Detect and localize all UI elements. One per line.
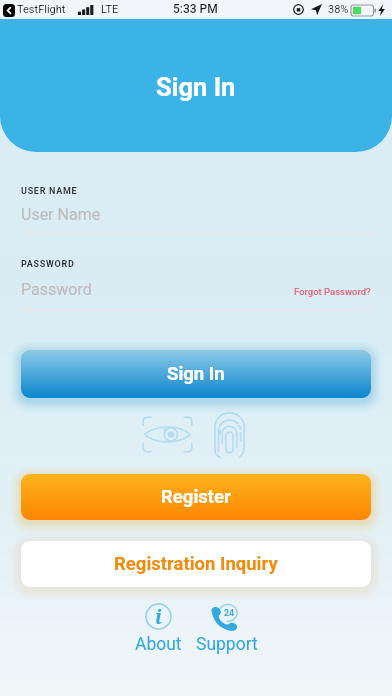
staticText: Support (196, 634, 258, 655)
button[interactable]: 24 (196, 604, 258, 655)
staticText: LTE (101, 3, 119, 16)
staticText: Sign In (156, 72, 236, 102)
staticText: Password (21, 280, 92, 299)
button[interactable]: Fingerprint (214, 412, 245, 457)
button[interactable]: Registration Inquiry (21, 541, 371, 587)
staticText: 5:33 PM (173, 2, 218, 16)
staticText: PASSWORD (21, 259, 75, 270)
button[interactable]: Register (21, 474, 371, 520)
staticText: Registration Inquiry (114, 553, 278, 575)
button[interactable]: Sign In (21, 350, 371, 398)
staticText: About (135, 634, 182, 655)
staticText: TestFlight (17, 3, 66, 16)
staticText: Register (161, 486, 231, 508)
staticText: USER NAME (21, 186, 78, 197)
staticText: 38% (328, 3, 349, 16)
button[interactable]: i (134, 603, 182, 655)
staticText: User Name (21, 205, 101, 224)
staticText: Forgot Password? (294, 286, 371, 297)
button[interactable]: Forgot Password? (292, 284, 373, 299)
button[interactable]: Face ID (141, 414, 194, 455)
button[interactable]: User Name field (21, 200, 371, 234)
staticText: i (155, 604, 162, 630)
staticText: Sign In (167, 363, 225, 385)
staticText: 24 (224, 608, 235, 619)
